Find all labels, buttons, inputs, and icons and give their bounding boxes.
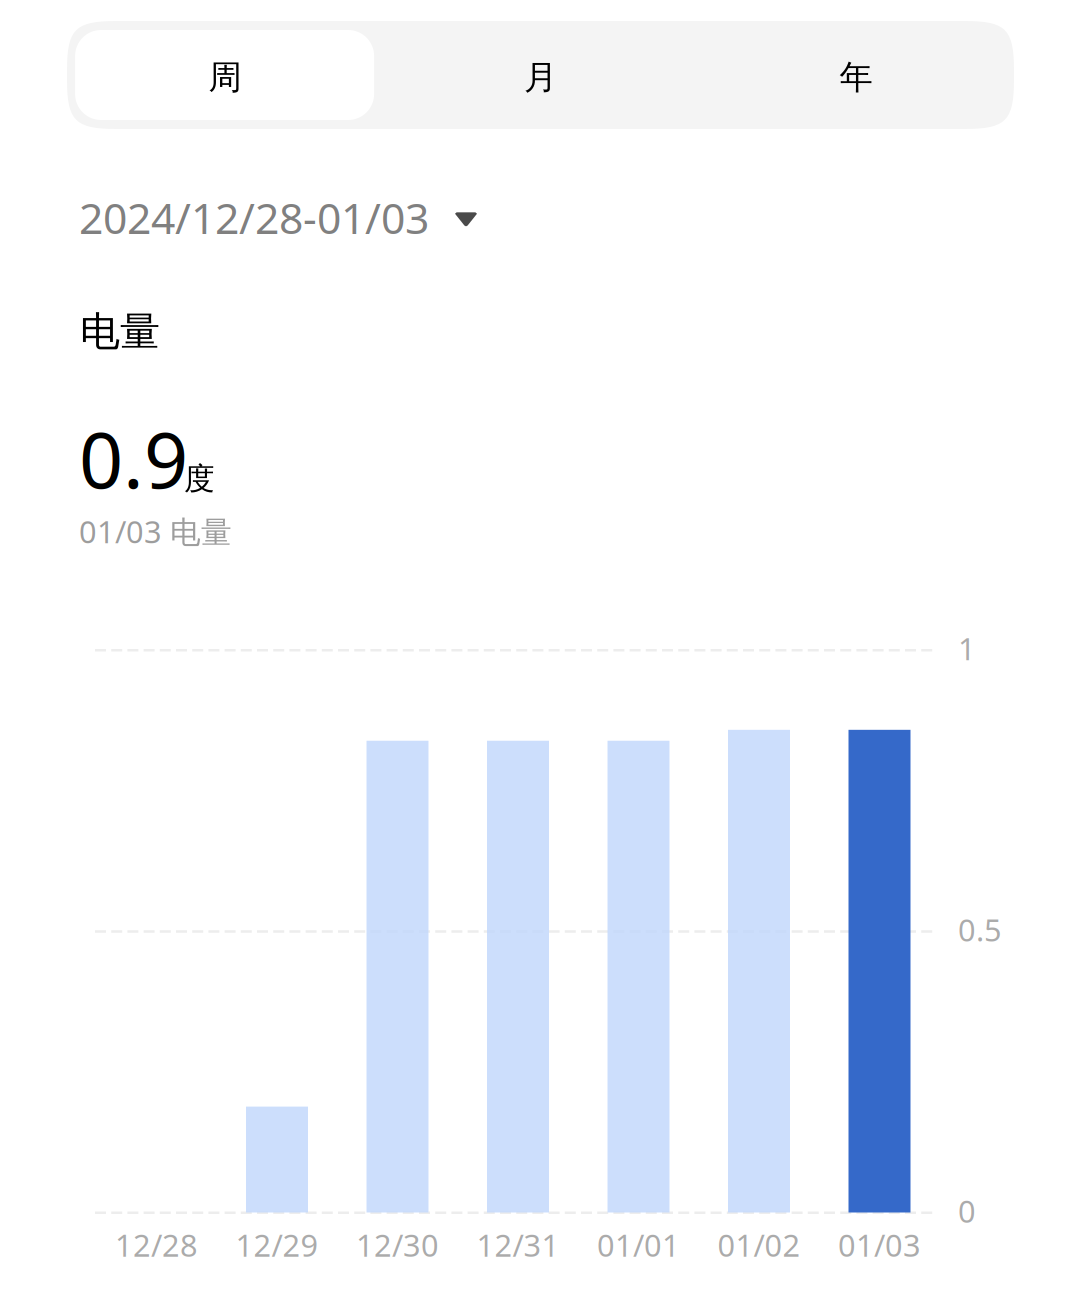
button[interactable]: 年 (698, 21, 1014, 129)
button[interactable]: 12/30 (337, 650, 458, 1272)
staticText: 2024/12/28-01/03 (79, 189, 429, 246)
button[interactable]: 12/31 (458, 650, 578, 1272)
staticText: 12/29 (235, 1224, 318, 1265)
staticText: 周 (208, 57, 241, 98)
button[interactable]: 周 (67, 21, 383, 129)
staticText: 电量 (80, 307, 160, 356)
staticText: 12/30 (356, 1224, 439, 1265)
staticText: 0 (958, 1190, 976, 1231)
staticText: 01/03 电量 (79, 511, 232, 552)
staticText: 月 (524, 57, 557, 98)
staticText: 年 (840, 57, 873, 98)
button[interactable]: 01/02 (699, 650, 819, 1272)
button[interactable]: 01/03 (819, 650, 940, 1272)
staticText: 1 (958, 628, 976, 669)
staticText: 12/31 (476, 1224, 559, 1265)
staticText: 01/01 (597, 1224, 680, 1265)
button[interactable]: 01/01 (578, 650, 699, 1272)
staticText: 01/03 (838, 1224, 921, 1265)
staticText: 0.5 (958, 909, 1002, 950)
staticText: 0.9 (79, 407, 188, 510)
button[interactable]: 月 (383, 21, 698, 129)
button[interactable]: 12/28 (96, 650, 217, 1272)
staticText: 度 (184, 460, 215, 498)
staticText: 12/28 (115, 1224, 198, 1265)
staticText: 01/02 (717, 1224, 800, 1265)
button[interactable]: 12/29 (217, 650, 337, 1272)
button[interactable]: 2024/12/28-01/03 (79, 189, 451, 246)
